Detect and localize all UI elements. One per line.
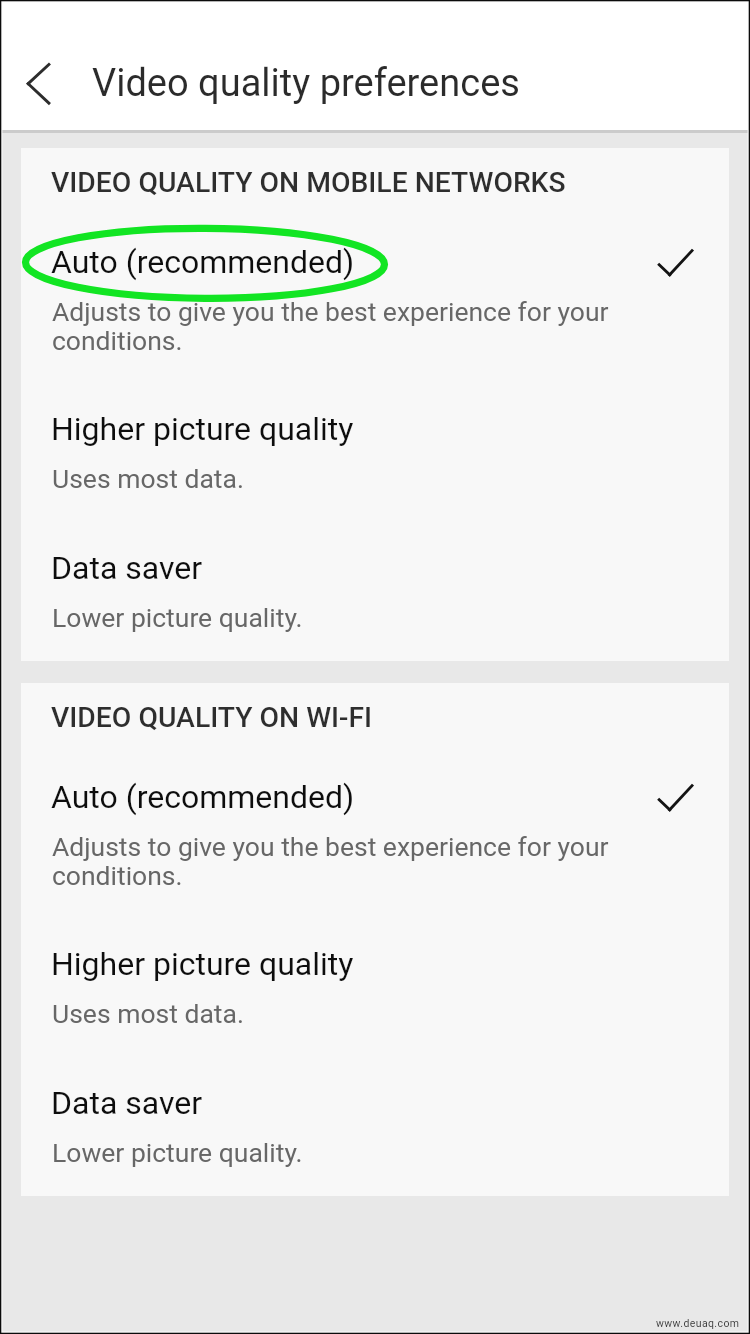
button[interactable]: Data saver: [21, 1084, 729, 1195]
button[interactable]: Navigate up: [0, 42, 88, 130]
button[interactable]: Data saver: [21, 549, 729, 660]
button[interactable]: Auto (recommended): [21, 778, 729, 933]
staticText: Higher picture quality: [51, 410, 354, 448]
staticText: Uses most data.: [52, 998, 634, 1029]
staticText: Uses most data.: [52, 463, 634, 494]
staticText: Auto (recommended): [51, 778, 355, 816]
staticText: Adjusts to give you the best experience …: [52, 831, 634, 891]
button[interactable]: Higher picture quality: [21, 945, 729, 1071]
other: Selected: [658, 785, 698, 825]
staticText: Data saver: [51, 549, 203, 587]
staticText: Auto (recommended): [51, 243, 355, 281]
staticText: www.deuaq.com: [656, 1317, 740, 1329]
staticText: Higher picture quality: [51, 945, 354, 983]
staticText: Data saver: [51, 1084, 203, 1122]
staticText: Video quality preferences: [92, 61, 520, 106]
button[interactable]: Auto (recommended): [21, 243, 729, 398]
staticText: VIDEO QUALITY ON MOBILE NETWORKS: [51, 166, 566, 199]
button[interactable]: Higher picture quality: [21, 410, 729, 536]
staticText: Adjusts to give you the best experience …: [52, 296, 634, 356]
staticText: Lower picture quality.: [52, 602, 634, 633]
other: Selected: [658, 250, 698, 290]
staticText: VIDEO QUALITY ON WI-FI: [51, 701, 372, 734]
staticText: Lower picture quality.: [52, 1137, 634, 1168]
